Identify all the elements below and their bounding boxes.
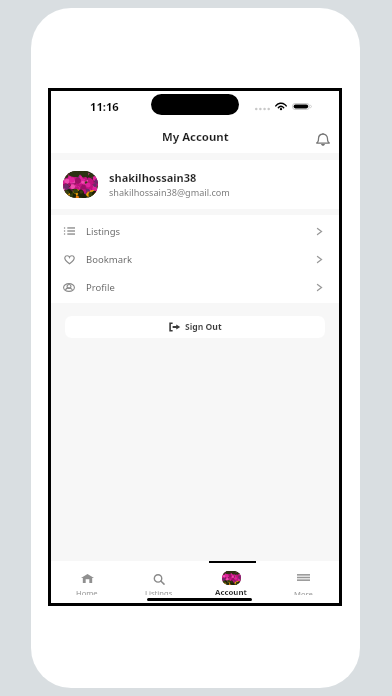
button[interactable]: Account xyxy=(195,561,267,595)
staticText: shakilhossain38@gmail.com xyxy=(109,186,230,198)
staticText: More xyxy=(294,589,313,595)
staticText: Account xyxy=(215,587,247,595)
staticText: shakilhossain38 xyxy=(109,170,197,185)
button[interactable]: Listings xyxy=(51,217,339,245)
button[interactable]: Sign Out xyxy=(65,316,325,338)
button[interactable]: Home xyxy=(51,561,123,595)
button[interactable]: Profile xyxy=(51,273,339,301)
staticText: Home xyxy=(76,588,98,595)
button[interactable]: Listings xyxy=(123,561,195,595)
staticText: Profile xyxy=(86,281,115,294)
button[interactable]: shakilhossain38 xyxy=(51,160,339,209)
staticText: Listings xyxy=(86,225,121,238)
button[interactable]: Bookmark xyxy=(51,245,339,273)
staticText: Listings xyxy=(145,588,173,595)
staticText: 11:16 xyxy=(90,99,119,114)
staticText: My Account xyxy=(162,129,229,145)
button[interactable]: More xyxy=(267,561,339,595)
staticText: Bookmark xyxy=(86,253,132,266)
button[interactable]: Notifications xyxy=(310,123,336,149)
staticText: Sign Out xyxy=(185,321,222,333)
